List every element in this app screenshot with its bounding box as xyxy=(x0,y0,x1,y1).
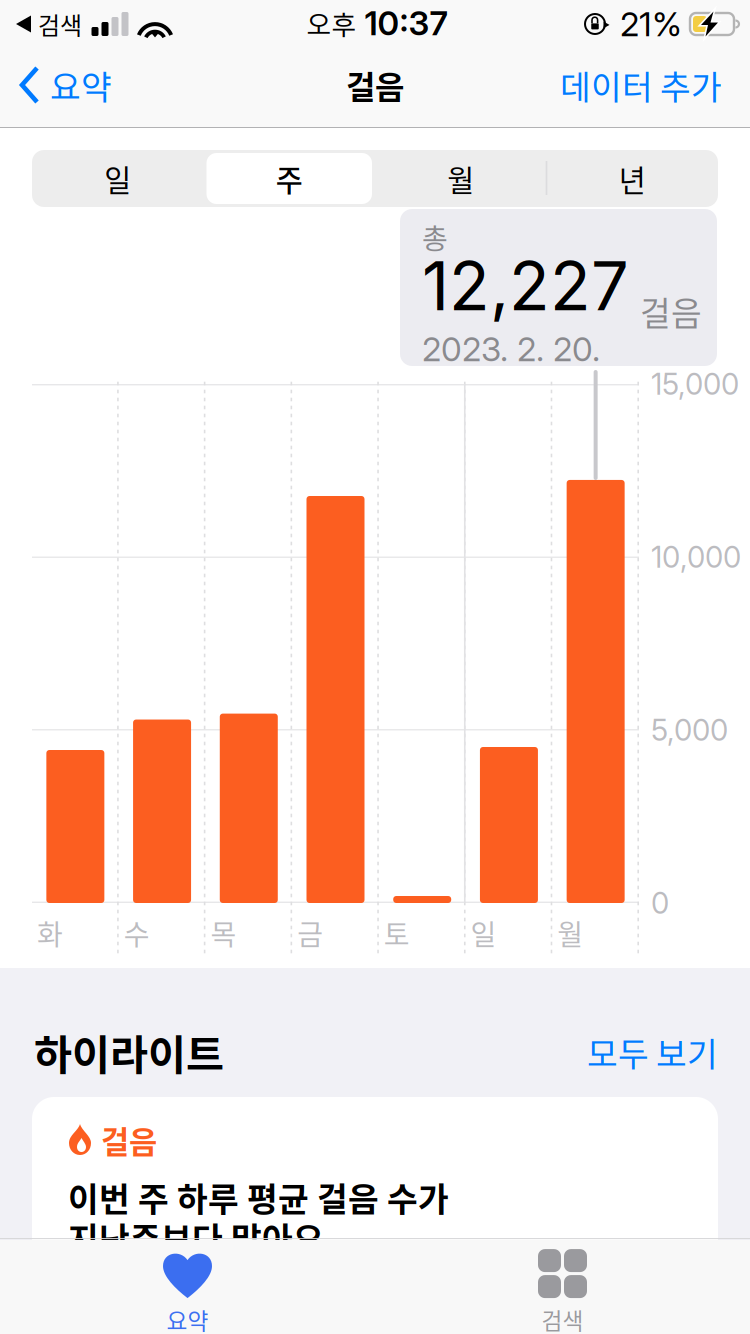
staticText: 이번 주 하루 평균 걸음 수가 xyxy=(68,1173,449,1221)
staticText: 12,227 xyxy=(422,246,629,326)
staticText: 토 xyxy=(384,913,410,953)
staticText: 화 xyxy=(37,913,63,953)
button[interactable]: 주 xyxy=(203,150,375,207)
button[interactable]: 모두 보기 xyxy=(0,1026,718,1078)
staticText: 5,000 xyxy=(651,712,728,748)
staticText: 금 xyxy=(297,913,323,953)
staticText: 모두 보기 xyxy=(587,1028,718,1076)
staticText: 걸음 xyxy=(640,287,702,335)
staticText: 10,000 xyxy=(651,539,741,575)
staticText: 요약 xyxy=(50,61,112,109)
staticText: 0 xyxy=(651,885,669,921)
staticText: 년 xyxy=(619,157,646,200)
button[interactable]: 데이터 추가 xyxy=(560,54,750,122)
button[interactable]: 검색 xyxy=(375,1239,750,1334)
button[interactable]: 년 xyxy=(546,150,718,207)
staticText: 일 xyxy=(104,157,131,200)
staticText: 주 xyxy=(276,157,303,200)
button[interactable]: 일 xyxy=(32,150,203,207)
staticText: 총 xyxy=(422,217,448,257)
staticText: 월 xyxy=(557,913,583,953)
button[interactable]: 요약 xyxy=(0,54,112,122)
button[interactable]: 요약 xyxy=(0,1239,375,1334)
button[interactable]: 하이라이트 xyxy=(34,1026,224,1078)
staticText: 걸음 xyxy=(346,62,404,108)
button[interactable]: 걸음 xyxy=(32,1097,718,1317)
button[interactable]: 월 xyxy=(375,150,546,207)
staticText: 목 xyxy=(210,913,236,953)
staticText: 요약 xyxy=(166,1303,208,1334)
staticText: 월 xyxy=(447,157,474,200)
staticText: 일 xyxy=(471,913,497,953)
staticText: 오후 xyxy=(306,4,356,42)
staticText: 걸음 xyxy=(101,1118,157,1162)
staticText: 검색 xyxy=(38,7,82,41)
staticText: 10:37 xyxy=(364,3,447,43)
staticText: 지난주보다 많아요. xyxy=(68,1213,335,1261)
staticText: 하이라이트 xyxy=(34,1022,224,1082)
staticText: 수 xyxy=(124,913,150,953)
staticText: 21% xyxy=(620,4,682,44)
staticText: 15,000 xyxy=(651,366,739,402)
staticText: 검색 xyxy=(541,1303,583,1334)
staticText: 데이터 추가 xyxy=(560,61,722,109)
staticText: 2023. 2. 20. xyxy=(422,329,600,369)
